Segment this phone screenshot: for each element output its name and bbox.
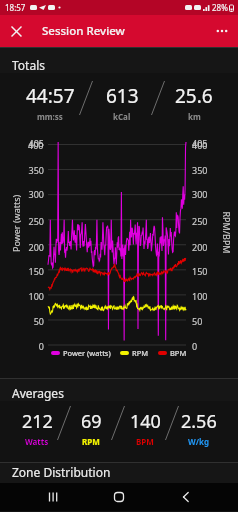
staticText: km <box>188 111 201 122</box>
button[interactable]: More options <box>206 15 238 47</box>
staticText: Session Review <box>42 23 125 39</box>
staticText: 25.6 <box>175 83 213 109</box>
staticText: 613 <box>106 83 139 109</box>
button[interactable]: Averages <box>0 378 238 401</box>
staticText: 2.56 <box>181 409 217 434</box>
staticText: 100 <box>192 290 208 302</box>
staticText: 0 <box>38 340 44 352</box>
staticText: 50 <box>192 315 203 327</box>
staticText: 212 <box>22 409 53 434</box>
staticText: 0 <box>192 340 198 352</box>
staticText: 28% <box>212 2 228 13</box>
staticText: Averages <box>12 385 64 401</box>
button[interactable]: Recents <box>39 483 67 511</box>
staticText: Power (watts) <box>10 194 22 252</box>
staticText: 200 <box>28 241 44 253</box>
staticText: 250 <box>28 215 44 227</box>
staticText: 18:57 <box>5 2 26 13</box>
staticText: kCal <box>113 111 131 122</box>
staticText: BPM <box>136 436 154 447</box>
staticText: RPM <box>132 348 149 358</box>
staticText: 300 <box>28 188 44 200</box>
staticText: 150 <box>28 265 44 277</box>
staticText: 100 <box>28 290 44 302</box>
staticText: RPM/BPM <box>220 211 232 254</box>
staticText: 350 <box>28 164 44 176</box>
staticText: 200 <box>192 241 208 253</box>
staticText: 405 <box>192 137 208 149</box>
staticText: 50 <box>33 315 44 327</box>
staticText: Power (watts) <box>63 348 111 358</box>
staticText: 44:57 <box>26 83 75 109</box>
staticText: 150 <box>192 265 208 277</box>
staticText: 400 <box>28 139 44 151</box>
staticText: 350 <box>192 164 208 176</box>
button[interactable]: Zone Distribution <box>0 462 238 483</box>
button[interactable]: Close <box>0 15 32 47</box>
staticText: 405 <box>28 137 44 149</box>
staticText: 300 <box>192 188 208 200</box>
staticText: 140 <box>130 409 161 434</box>
staticText: W/kg <box>188 436 210 447</box>
button[interactable]: Back <box>172 483 200 511</box>
staticText: 250 <box>192 215 208 227</box>
staticText: Totals <box>12 57 46 73</box>
button[interactable]: Totals <box>0 47 238 73</box>
staticText: BPM <box>170 348 187 358</box>
staticText: Watts <box>25 436 49 447</box>
staticText: RPM <box>82 436 100 447</box>
staticText: mm:ss <box>37 111 63 122</box>
staticText: Zone Distribution <box>12 464 111 480</box>
button[interactable]: Home <box>105 483 133 511</box>
staticText: 400 <box>192 139 208 151</box>
staticText: 69 <box>81 409 102 434</box>
